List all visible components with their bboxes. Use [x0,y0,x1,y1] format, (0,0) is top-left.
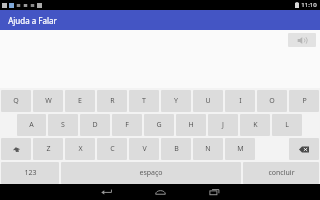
button[interactable]: J [208,114,238,136]
staticText: V [142,144,147,154]
staticText: U [205,96,211,106]
staticText: 123 [24,168,37,178]
staticText: T [142,96,146,106]
staticText: D [92,120,98,130]
staticText: O [269,96,275,106]
staticText: H [188,120,194,130]
button[interactable]: N [193,138,223,160]
button[interactable]: L [272,114,302,136]
staticText: S [61,120,65,130]
staticText: X [78,144,83,154]
button[interactable]: F [112,114,142,136]
button[interactable]: R [97,90,127,112]
button[interactable]: D [80,114,110,136]
button[interactable]: S [48,114,78,136]
button[interactable]: K [240,114,270,136]
staticText: concluir [268,168,295,178]
button[interactable]: Falar [288,33,316,47]
button[interactable]: espaço [61,162,241,184]
button[interactable]: Q [1,90,31,112]
staticText: K [253,120,258,130]
button[interactable]: M [225,138,255,160]
button[interactable]: H [176,114,206,136]
staticText: A [29,120,34,130]
button[interactable]: V [129,138,159,160]
button[interactable]: Home [140,184,180,200]
button[interactable]: B [161,138,191,160]
button[interactable]: C [97,138,127,160]
button[interactable]: Y [161,90,191,112]
staticText: M [237,144,244,154]
staticText: B [174,144,179,154]
staticText: Z [46,144,51,154]
staticText: N [205,144,211,154]
button[interactable]: P [289,90,319,112]
staticText: J [222,120,224,130]
button[interactable]: O [257,90,287,112]
button[interactable]: Backspace [289,138,319,160]
button[interactable]: E [65,90,95,112]
staticText: Y [174,96,178,106]
staticText: espaço [139,168,163,178]
button[interactable]: Recents [194,184,234,200]
button[interactable]: I [225,90,255,112]
staticText: F [125,120,129,130]
button[interactable]: A [17,114,46,136]
button[interactable]: G [144,114,174,136]
staticText: W [45,96,52,106]
staticText: Ajuda a Falar [8,15,57,26]
button[interactable]: U [193,90,223,112]
button[interactable]: Back [86,184,126,200]
button[interactable]: T [129,90,159,112]
staticText: P [302,96,307,106]
button[interactable]: 123 [1,162,59,184]
button[interactable]: W [33,90,63,112]
button[interactable]: Shift [1,138,31,160]
staticText: G [156,120,162,130]
button[interactable]: X [65,138,95,160]
staticText: E [78,96,82,106]
staticText: L [285,120,289,130]
staticText: 11:10 [301,1,317,9]
staticText: R [110,96,115,106]
staticText: C [110,144,115,154]
staticText: Q [13,96,19,106]
button[interactable]: Z [33,138,63,160]
staticText: I [239,96,242,106]
button[interactable]: concluir [243,162,319,184]
